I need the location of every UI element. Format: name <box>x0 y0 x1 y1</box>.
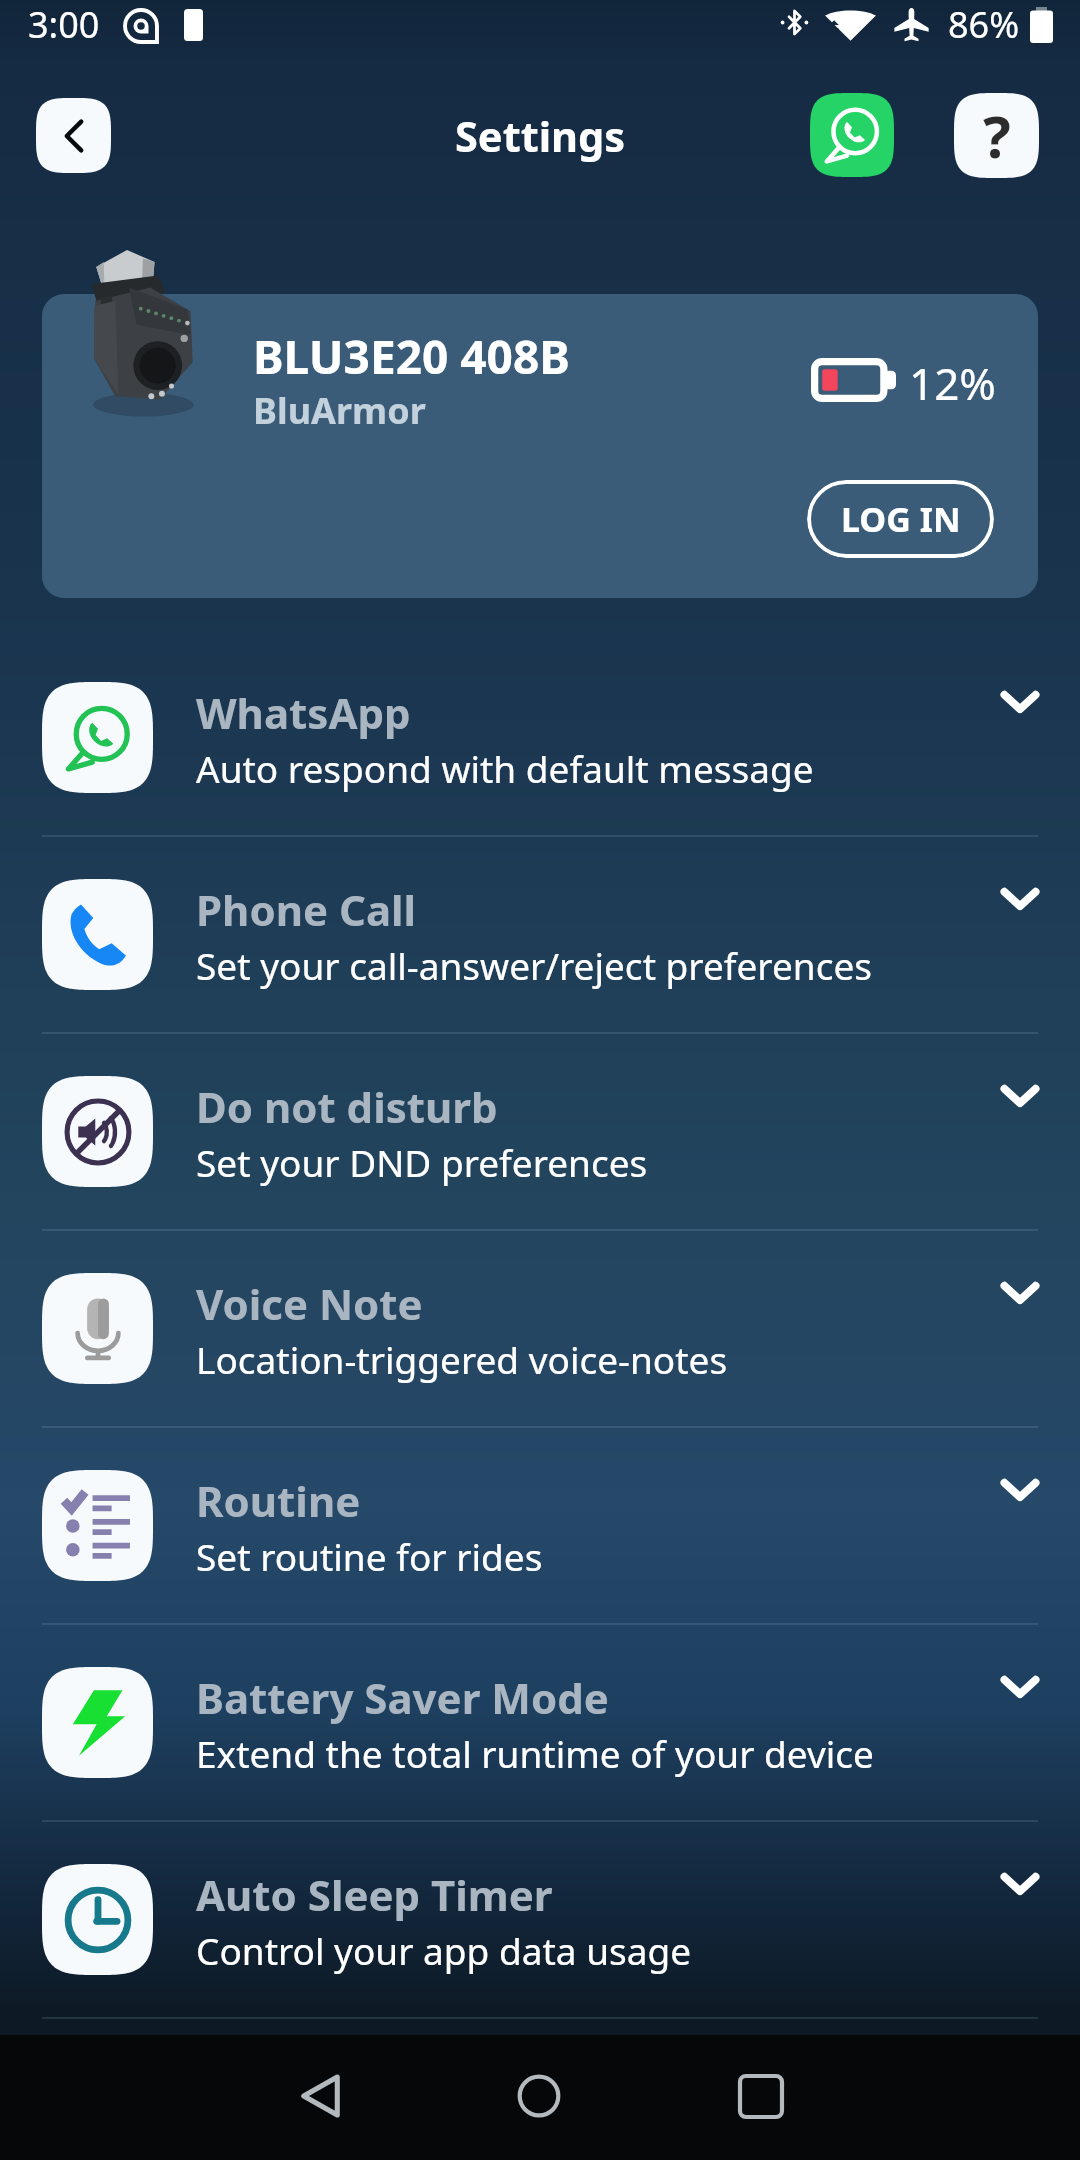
button[interactable]: WhatsApp <box>0 640 1080 835</box>
button[interactable]: Recents <box>721 2056 801 2136</box>
button[interactable]: LOG IN <box>807 480 994 558</box>
button[interactable]: Voice Note <box>0 1231 1080 1426</box>
staticText: 12% <box>909 353 996 413</box>
button[interactable]: Back <box>36 98 111 173</box>
staticText: Battery Saver Mode <box>196 1669 609 1726</box>
staticText: Set your DND preferences <box>196 1137 648 1187</box>
staticText: Voice Note <box>196 1275 423 1332</box>
staticText: WhatsApp <box>196 684 411 741</box>
staticText: ? <box>983 96 1011 175</box>
button[interactable]: Battery Saver Mode <box>0 1625 1080 1820</box>
button[interactable]: Do not disturb <box>0 1034 1080 1229</box>
button[interactable]: Home <box>499 2056 579 2136</box>
staticText: Set your call-answer/reject preferences <box>196 940 872 990</box>
staticText: Control your app data usage <box>196 1925 692 1975</box>
staticText: Phone Call <box>196 881 417 938</box>
staticText: Extend the total runtime of your device <box>196 1728 874 1778</box>
button[interactable]: Help <box>954 93 1039 178</box>
button[interactable]: Back <box>280 2056 360 2136</box>
staticText: 3:00 <box>28 0 100 49</box>
staticText: Auto Sleep Timer <box>196 1866 553 1923</box>
staticText: 86% <box>948 0 1020 49</box>
button[interactable]: Auto Sleep Timer <box>0 1822 1080 2017</box>
staticText: Do not disturb <box>196 1078 498 1135</box>
staticText: BluArmor <box>253 386 426 435</box>
button[interactable]: Routine <box>0 1428 1080 1623</box>
staticText: Location-triggered voice-notes <box>196 1334 728 1384</box>
staticText: Auto respond with default message <box>196 743 814 793</box>
button[interactable] <box>42 294 1038 598</box>
staticText: Settings <box>455 108 626 165</box>
staticText: Set routine for rides <box>196 1531 543 1581</box>
staticText: Routine <box>196 1472 361 1529</box>
button[interactable]: Phone Call <box>0 837 1080 1032</box>
staticText: LOG IN <box>841 496 961 542</box>
button[interactable]: WhatsApp <box>810 93 894 177</box>
staticText: BLU3E20 408B <box>253 325 570 388</box>
